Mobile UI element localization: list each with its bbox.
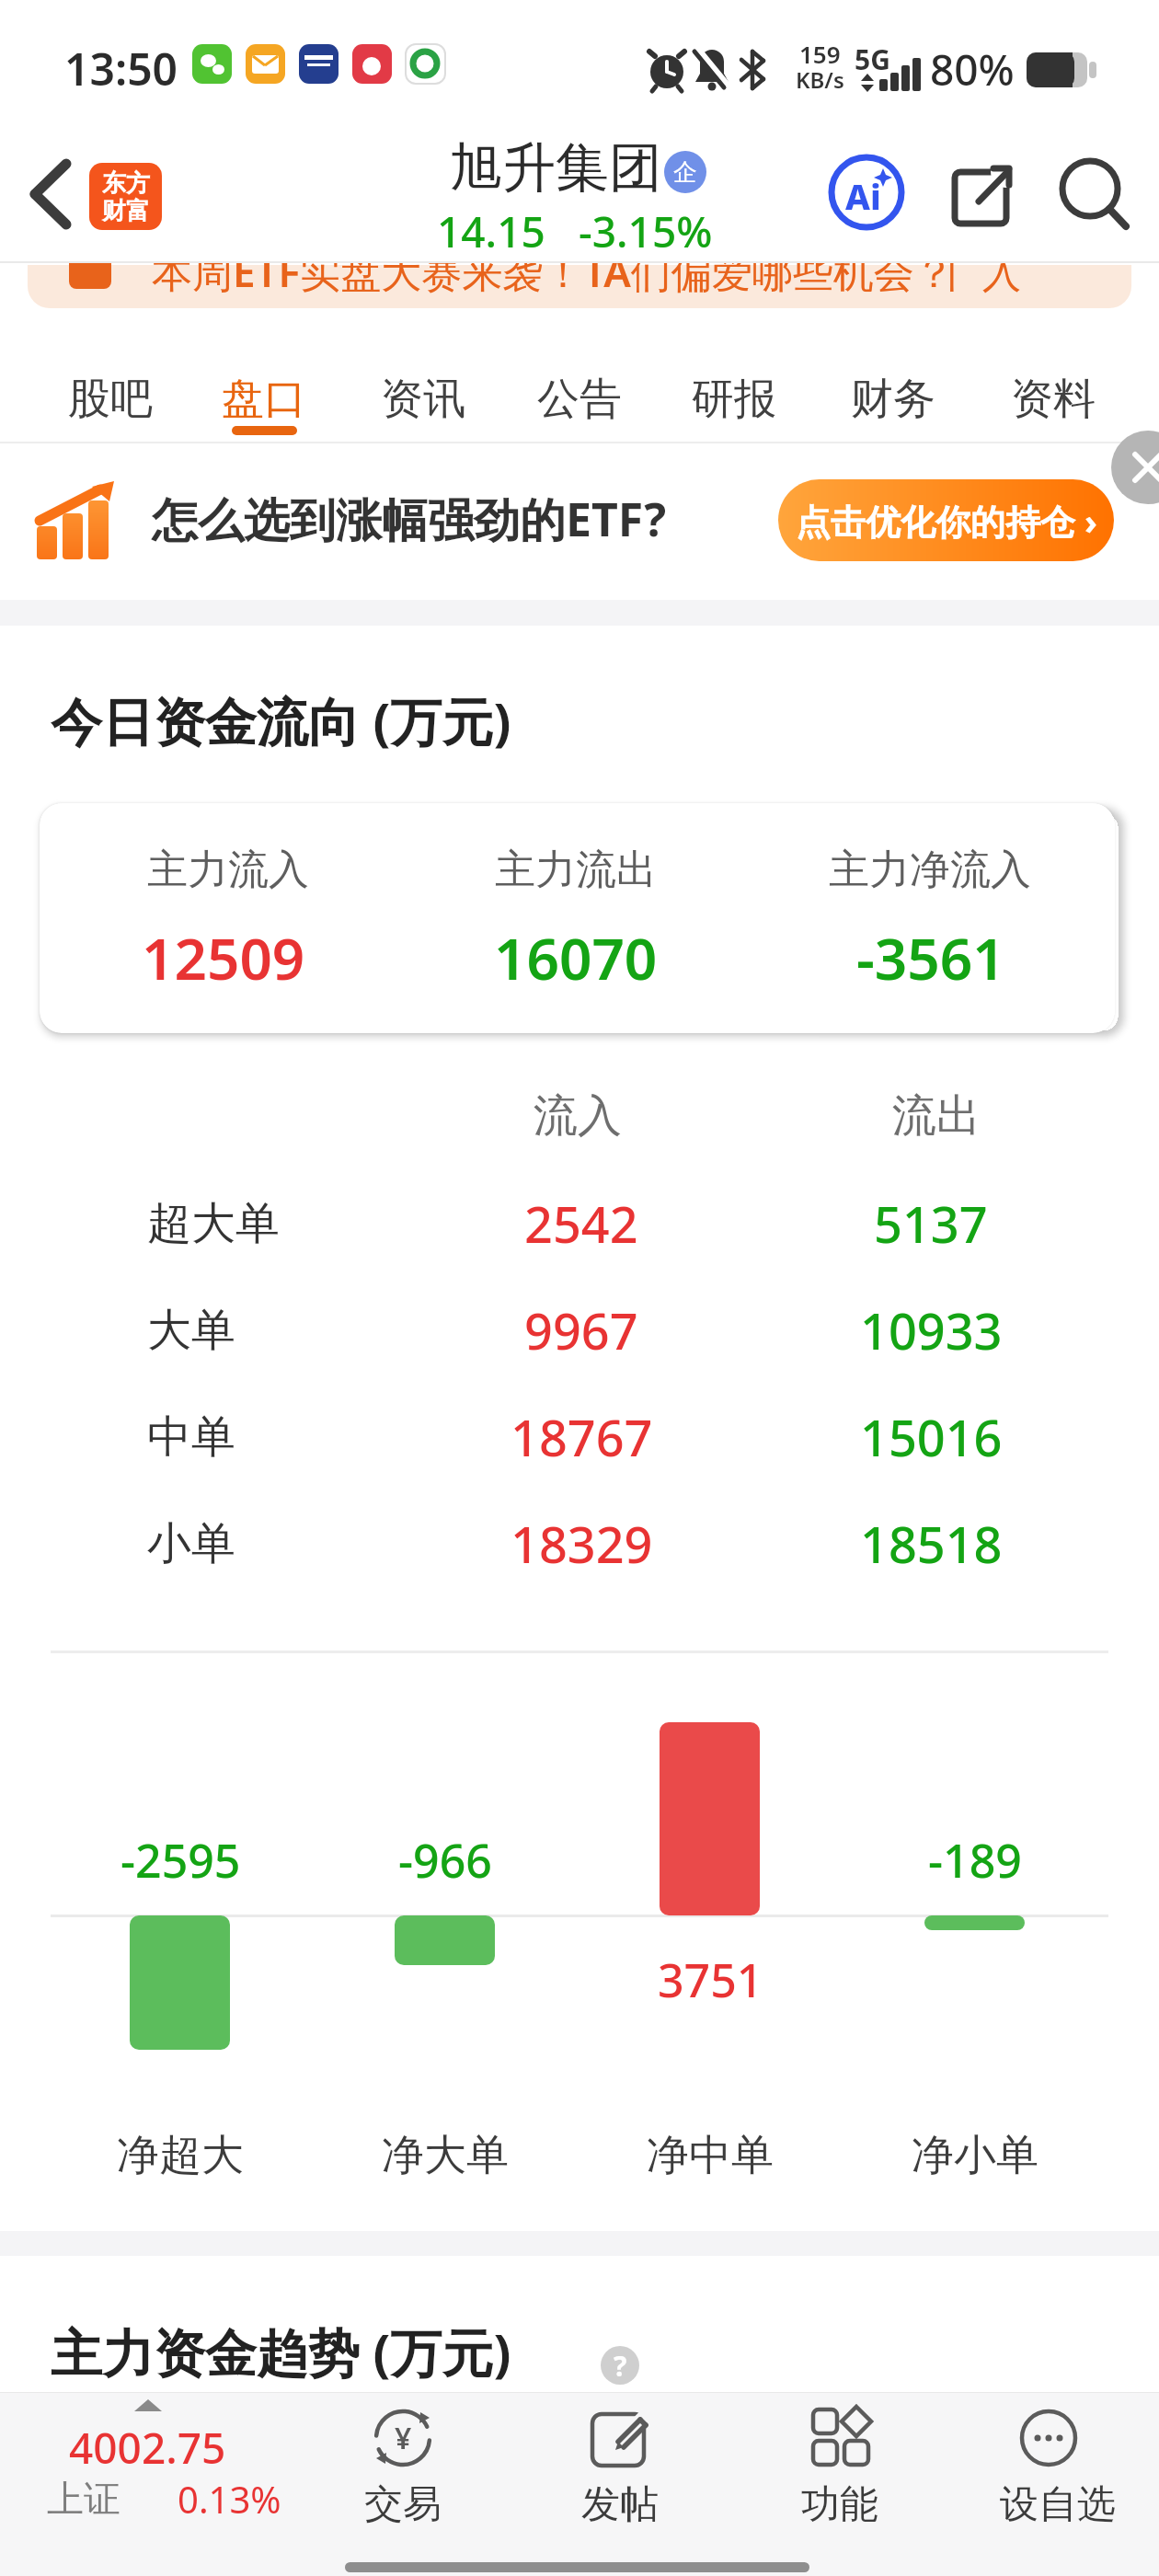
staticText: 5137 bbox=[874, 1190, 988, 1258]
staticText: 旭升集团 bbox=[449, 134, 662, 201]
staticText: 12509 bbox=[142, 919, 305, 996]
staticText: 今日资金流向 (万元) bbox=[51, 685, 511, 755]
staticText: 股吧 bbox=[68, 373, 153, 426]
button[interactable]: Ai bbox=[828, 154, 905, 231]
staticText: 流出 bbox=[892, 1088, 981, 1144]
staticText: 14.15 bbox=[437, 202, 545, 260]
staticText: 上证 bbox=[47, 2476, 120, 2522]
button[interactable] bbox=[28, 2393, 294, 2540]
staticText: 净中单 bbox=[647, 2129, 774, 2182]
button[interactable]: 公告 bbox=[511, 357, 648, 442]
staticText: -3561 bbox=[856, 919, 1005, 996]
staticText: 净超大 bbox=[117, 2129, 244, 2182]
staticText: 发帖 bbox=[581, 2480, 659, 2529]
staticText: 159 bbox=[799, 38, 841, 70]
button[interactable] bbox=[775, 2393, 904, 2540]
staticText: KB/s bbox=[796, 64, 844, 95]
staticText: -189 bbox=[928, 1829, 1022, 1892]
staticText: 公告 bbox=[537, 373, 622, 426]
staticText: 怎么选到涨幅强劲的ETF? bbox=[152, 488, 667, 550]
staticText: 4002.75 bbox=[69, 2419, 226, 2477]
staticText: 丨 入 bbox=[934, 246, 1021, 298]
staticText: 中单 bbox=[147, 1409, 235, 1465]
staticText: 5G bbox=[855, 40, 890, 78]
button[interactable] bbox=[947, 161, 1019, 233]
staticText: ¥ bbox=[395, 2418, 412, 2458]
button[interactable]: 资料 bbox=[984, 357, 1122, 442]
staticText: 超大单 bbox=[147, 1196, 280, 1251]
staticText: 盘口 bbox=[222, 373, 306, 426]
staticText: 13:50 bbox=[64, 39, 178, 98]
staticText: 9967 bbox=[524, 1296, 638, 1364]
staticText: 18329 bbox=[511, 1510, 653, 1578]
staticText: 18518 bbox=[860, 1510, 1003, 1578]
staticText: 流入 bbox=[534, 1088, 622, 1144]
staticText: 功能 bbox=[801, 2480, 878, 2529]
staticText: 主力资金趋势 (万元) bbox=[51, 2317, 511, 2386]
staticText: 财务 bbox=[851, 373, 935, 426]
button[interactable] bbox=[339, 2393, 467, 2540]
staticText: 大单 bbox=[147, 1303, 235, 1358]
staticText: ? bbox=[614, 2347, 627, 2385]
staticText: 2542 bbox=[524, 1190, 638, 1258]
staticText: -3.15% bbox=[579, 202, 713, 260]
button[interactable]: 东方 bbox=[89, 163, 162, 230]
staticText: 设自选 bbox=[1000, 2480, 1116, 2529]
staticText: 80% bbox=[930, 40, 1015, 98]
staticText: 东方 bbox=[102, 168, 150, 199]
staticText: -2595 bbox=[120, 1829, 241, 1892]
staticText: 主力流入 bbox=[147, 845, 309, 895]
staticText: 资讯 bbox=[381, 373, 465, 426]
staticText: 主力净流入 bbox=[829, 845, 1031, 895]
staticText: Ai bbox=[845, 172, 881, 220]
button[interactable]: 财务 bbox=[824, 357, 962, 442]
staticText: -966 bbox=[398, 1829, 492, 1892]
button[interactable] bbox=[17, 147, 83, 239]
staticText: 净大单 bbox=[382, 2129, 509, 2182]
button[interactable] bbox=[556, 2393, 684, 2540]
staticText: 研报 bbox=[692, 373, 776, 426]
staticText: 企 bbox=[673, 157, 697, 188]
button[interactable]: 资讯 bbox=[354, 357, 492, 442]
staticText: 交易 bbox=[364, 2480, 442, 2529]
staticText: 15016 bbox=[860, 1403, 1003, 1471]
staticText: 财富 bbox=[102, 196, 150, 226]
button[interactable] bbox=[1111, 431, 1159, 504]
staticText: 0.13% bbox=[178, 2474, 281, 2524]
button[interactable]: 盘口 bbox=[195, 357, 333, 442]
button[interactable] bbox=[984, 2393, 1131, 2540]
staticText: 小单 bbox=[147, 1516, 235, 1571]
staticText: 净小单 bbox=[912, 2129, 1039, 2182]
button[interactable]: 点击优化你的持仓 › bbox=[778, 479, 1114, 561]
staticText: 主力流出 bbox=[495, 845, 657, 895]
button[interactable] bbox=[1056, 155, 1133, 232]
staticText: 点击优化你的持仓 › bbox=[796, 497, 1097, 545]
staticText: 18767 bbox=[511, 1403, 653, 1471]
button[interactable]: 股吧 bbox=[41, 357, 179, 442]
staticText: 3751 bbox=[658, 1949, 763, 2011]
staticText: 10933 bbox=[860, 1296, 1003, 1364]
button[interactable]: 研报 bbox=[665, 357, 803, 442]
staticText: 本周ETF实盘大赛来袭！TA们偏爱哪些机会？ bbox=[152, 244, 955, 299]
staticText: 16070 bbox=[494, 919, 658, 996]
staticText: 资料 bbox=[1011, 373, 1096, 426]
